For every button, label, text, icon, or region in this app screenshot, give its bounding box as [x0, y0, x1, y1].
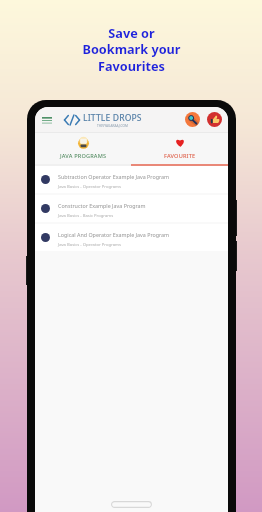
button[interactable]: Subtraction Operator Example Java Progra…	[35, 166, 228, 193]
button[interactable]: Search	[185, 112, 200, 127]
staticText: Logical And Operator Example Java Progra…	[58, 231, 170, 238]
button[interactable]: Constructor Example Java Program	[35, 195, 228, 222]
staticText: Java Basics - Operator Programs	[58, 184, 122, 190]
button[interactable]: Logical And Operator Example Java Progra…	[35, 224, 228, 251]
staticText: JAVA PROGRAMS	[60, 152, 107, 160]
staticText: Java Basics - Basic Programs	[58, 213, 114, 219]
staticText: FAVOURITE	[164, 152, 196, 160]
button[interactable]: Menu	[39, 110, 55, 130]
staticText: Save or Bookmark your Favourites	[82, 24, 181, 75]
staticText: Subtraction Operator Example Java Progra…	[58, 173, 170, 180]
button[interactable]: JAVA PROGRAMS	[35, 133, 131, 164]
staticText: Java Basics - Operator Programs	[58, 242, 122, 248]
staticText: THIVYAGARAAJ.COM	[97, 124, 128, 128]
button[interactable]: FAVOURITE	[131, 133, 228, 164]
staticText: LITTLE DROPS	[83, 112, 142, 124]
button[interactable]: Favourites	[207, 112, 222, 127]
staticText: Constructor Example Java Program	[58, 202, 146, 209]
